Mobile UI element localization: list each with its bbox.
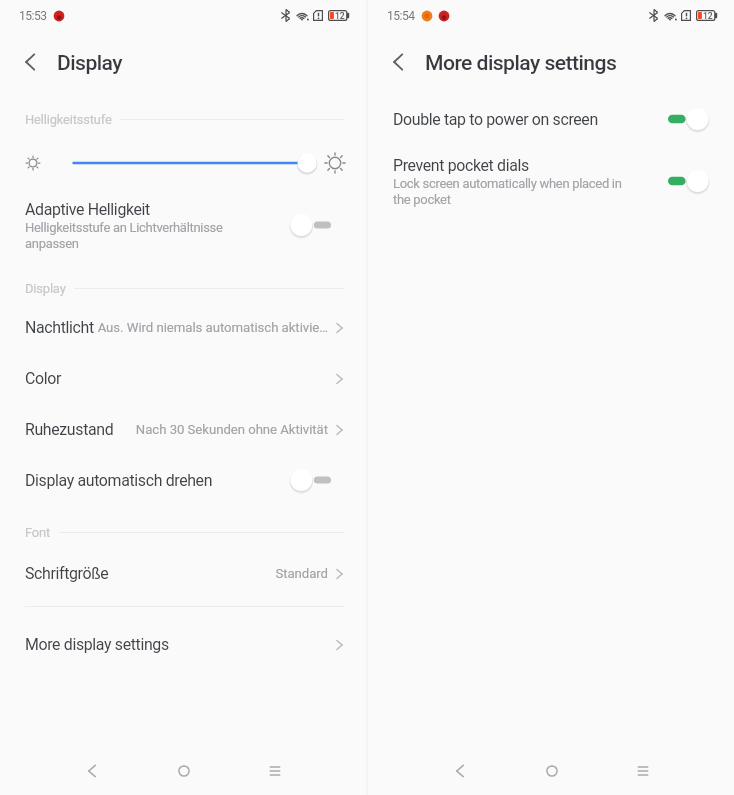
button[interactable]: Back — [376, 40, 420, 84]
staticText: 12 — [335, 11, 345, 21]
staticText: Font — [25, 525, 51, 540]
staticText: More display settings — [25, 635, 169, 654]
staticText: Lock screen automatically when placed in… — [393, 176, 628, 207]
staticText: Helligkeitsstufe an Lichtverhältnisse an… — [25, 220, 230, 251]
staticText: Standard — [110, 566, 328, 581]
button[interactable]: Home — [506, 747, 597, 795]
staticText: More display settings — [425, 50, 617, 75]
button[interactable]: Schriftgröße — [0, 548, 366, 599]
button[interactable]: Back — [46, 747, 138, 795]
button[interactable]: Back — [414, 747, 506, 795]
staticText: 12 — [703, 11, 713, 21]
button[interactable]: Home — [138, 747, 229, 795]
button[interactable]: More display settings — [0, 607, 366, 682]
button[interactable]: Ruhezustand — [0, 404, 366, 455]
staticText: Nachtlicht — [25, 318, 94, 337]
button[interactable]: Color — [0, 353, 366, 404]
staticText: Color — [25, 369, 61, 388]
button[interactable]: Display automatisch drehen — [0, 455, 366, 506]
staticText: 15:54 — [387, 9, 415, 23]
staticText: Ruhezustand — [25, 420, 114, 439]
staticText: Nach 30 Sekunden ohne Aktivität — [115, 422, 328, 437]
button[interactable]: Nachtlicht — [0, 302, 366, 353]
staticText: Display — [25, 281, 66, 296]
button[interactable]: Recent apps — [597, 747, 688, 795]
button[interactable]: Back — [8, 40, 52, 84]
staticText: Helligkeitsstufe — [25, 112, 112, 127]
button[interactable]: Prevent pocket dials — [368, 156, 734, 207]
button[interactable]: Double tap to power on screen — [368, 96, 734, 142]
staticText: Prevent pocket dials — [393, 156, 529, 175]
staticText: Aus. Wird niemals automatisch aktivie… — [95, 320, 328, 335]
staticText: Double tap to power on screen — [393, 110, 598, 129]
staticText: Schriftgröße — [25, 564, 109, 583]
staticText: Display — [57, 50, 123, 75]
staticText: Adaptive Helligkeit — [25, 200, 150, 219]
staticText: Display automatisch drehen — [25, 471, 213, 490]
staticText: 15:53 — [19, 9, 47, 23]
button[interactable]: Recent apps — [229, 747, 320, 795]
button[interactable]: Adaptive Helligkeit — [0, 200, 366, 251]
